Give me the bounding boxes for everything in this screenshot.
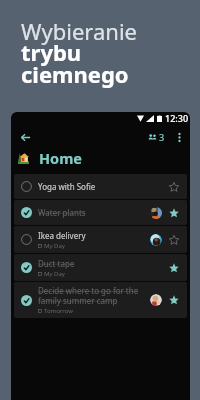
button[interactable]: Toggle complete xyxy=(14,254,187,281)
staticText: 3 xyxy=(159,131,165,143)
button[interactable]: 3 xyxy=(146,129,167,145)
staticText: My Day xyxy=(44,270,65,278)
button[interactable]: Star task xyxy=(169,263,179,273)
staticText: Tomorrow xyxy=(44,307,73,315)
button[interactable]: Toggle complete xyxy=(19,260,34,275)
staticText: Wybieranie trybu ciemnego xyxy=(21,16,137,90)
button[interactable]: Toggle complete xyxy=(19,293,34,308)
staticText: Ikea delivery xyxy=(38,230,86,241)
button[interactable]: More options xyxy=(171,129,187,145)
button[interactable]: Back xyxy=(16,128,34,146)
staticText: Home xyxy=(39,148,82,168)
button[interactable]: Toggle complete xyxy=(14,226,187,253)
button[interactable]: Star task xyxy=(169,208,179,218)
staticText: 12:30 xyxy=(165,112,189,124)
button[interactable]: Star task xyxy=(169,295,179,305)
button[interactable]: Toggle complete xyxy=(14,174,187,199)
staticText: My Day xyxy=(44,242,65,250)
button[interactable]: Toggle complete xyxy=(14,200,187,225)
staticText: Decide where to go for the family summer… xyxy=(38,285,150,306)
staticText: Duct tape xyxy=(38,258,75,269)
staticText: Yoga with Sofie xyxy=(38,181,96,192)
button[interactable]: Toggle complete xyxy=(19,205,34,220)
button[interactable]: Toggle complete xyxy=(19,179,34,194)
button[interactable]: Star task xyxy=(169,235,179,245)
button[interactable]: Star task xyxy=(169,182,179,192)
button[interactable]: Toggle complete xyxy=(14,282,187,318)
button[interactable]: Toggle complete xyxy=(19,232,34,247)
staticText: Water plants xyxy=(38,207,86,218)
